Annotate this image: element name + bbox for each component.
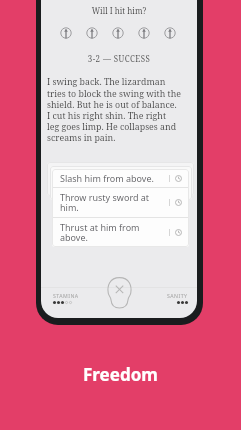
other: Attack die — [138, 27, 150, 39]
staticText: Slash him from above. — [60, 172, 166, 184]
button[interactable]: Throw rusty sword at him. — [52, 188, 189, 217]
staticText: SANITY — [167, 292, 188, 299]
staticText: STAMINA — [53, 292, 79, 299]
other: Attack die — [60, 27, 72, 39]
other: Attack die — [112, 27, 124, 39]
other: Attack die — [86, 27, 98, 39]
staticText: Throw rusty sword at him. — [60, 191, 166, 214]
staticText: Freedom — [83, 363, 158, 386]
other: Attack die — [164, 27, 176, 39]
staticText: 3-2 — SUCCESS — [41, 53, 197, 64]
staticText: Will I hit him? — [41, 5, 197, 16]
button[interactable]: Slash him from above. — [52, 169, 189, 187]
staticText: I swing back. The lizardman tries to blo… — [47, 76, 197, 143]
button[interactable]: Death status — [107, 277, 132, 308]
button[interactable]: Thrust at him from above. — [52, 218, 189, 247]
staticText: Thrust at him from above. — [60, 221, 166, 244]
